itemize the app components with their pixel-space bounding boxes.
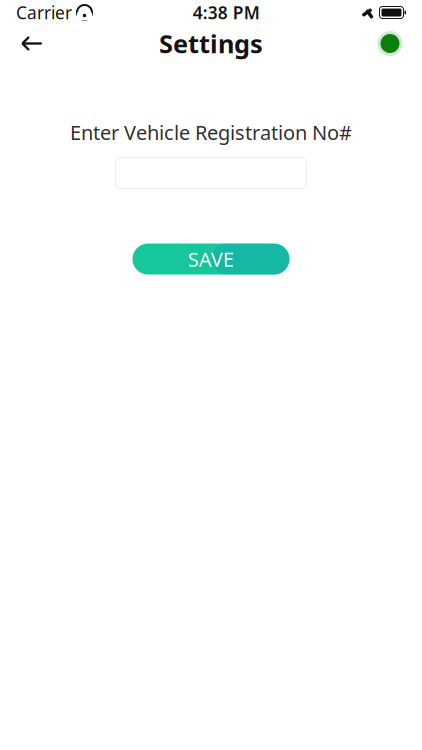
button[interactable]: SAVE — [132, 244, 289, 275]
staticText: Carrier — [16, 1, 72, 24]
button[interactable]: Back — [10, 25, 54, 62]
button[interactable]: Vehicle registration number field — [115, 158, 306, 189]
staticText: Settings — [159, 27, 263, 60]
button[interactable]: Connection status — [368, 25, 412, 62]
staticText: SAVE — [188, 246, 234, 272]
staticText: 4:38 PM — [193, 1, 260, 24]
staticText: Enter Vehicle Registration No# — [70, 119, 352, 146]
